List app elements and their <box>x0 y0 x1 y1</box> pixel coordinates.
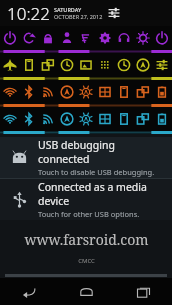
button[interactable]: Location <box>133 53 152 77</box>
button[interactable]: Timer <box>114 53 133 77</box>
button[interactable]: Power menu <box>152 26 171 50</box>
button[interactable]: Airplane mode <box>1 53 19 77</box>
button[interactable]: GPS <box>57 80 76 104</box>
staticText: 10:22 <box>7 2 50 25</box>
button[interactable]: Quick settings <box>103 2 125 24</box>
staticText: SATURDAY <box>54 6 82 13</box>
button[interactable]: Sync <box>19 26 38 50</box>
button[interactable]: Battery <box>152 107 171 131</box>
button[interactable]: Connected as a media device <box>0 179 172 220</box>
button[interactable]: NFC <box>38 80 57 104</box>
button[interactable]: Wi-Fi <box>1 80 19 104</box>
button[interactable]: Back <box>0 278 58 305</box>
button[interactable]: Screen <box>19 53 38 77</box>
staticText: USB debugging connected <box>38 138 166 166</box>
button[interactable]: Lock <box>38 26 57 50</box>
staticText: Connected as a media device <box>38 180 166 208</box>
button[interactable]: Battery <box>152 80 171 104</box>
staticText: OCTOBER 27, 2012 <box>54 13 103 20</box>
button[interactable]: Rotation <box>133 107 152 131</box>
button[interactable]: Clock <box>57 53 76 77</box>
button[interactable]: Auto brightness <box>76 80 95 104</box>
button[interactable]: Sliders <box>152 53 171 77</box>
staticText: CMCC <box>78 257 95 265</box>
button[interactable]: Signal <box>76 26 95 50</box>
button[interactable]: Settings <box>95 26 114 50</box>
button[interactable]: NFC <box>38 107 57 131</box>
button[interactable]: Apps <box>95 53 114 77</box>
staticText: Touch to disable USB debugging. <box>38 167 155 177</box>
button[interactable]: Wi-Fi <box>1 107 19 131</box>
button[interactable]: Close notification shade <box>0 273 172 278</box>
button[interactable]: Mobile data <box>95 80 114 104</box>
button[interactable]: Bluetooth <box>19 80 38 104</box>
button[interactable]: Recent apps <box>115 278 172 305</box>
button[interactable]: Screen <box>114 80 133 104</box>
button[interactable]: Screen <box>114 107 133 131</box>
button[interactable]: Brightness <box>133 26 152 50</box>
button[interactable]: Auto brightness <box>76 107 95 131</box>
button[interactable]: Bluetooth <box>19 107 38 131</box>
button[interactable]: Gallery <box>76 53 95 77</box>
button[interactable]: Profile <box>57 26 76 50</box>
button[interactable]: Rotation <box>38 53 57 77</box>
button[interactable]: Rotation <box>133 80 152 104</box>
button[interactable]: Headset <box>114 26 133 50</box>
staticText: Touch for other USB options. <box>38 209 140 219</box>
button[interactable]: GPS <box>57 107 76 131</box>
button[interactable]: Home <box>58 278 115 305</box>
staticText: www.farsroid.com <box>24 230 149 249</box>
button[interactable]: Power <box>1 26 19 50</box>
button[interactable]: Mobile data <box>95 107 114 131</box>
button[interactable]: USB debugging connected <box>0 137 172 178</box>
